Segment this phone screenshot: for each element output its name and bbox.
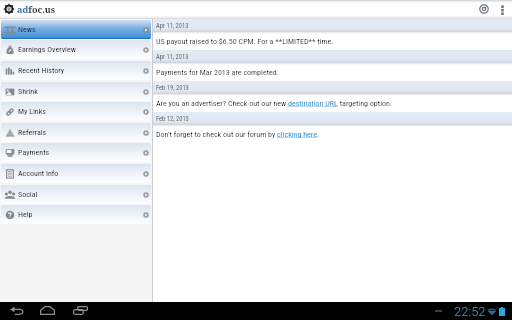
button[interactable]: Refresh (477, 2, 491, 16)
staticText: Earnings Overview (18, 45, 76, 54)
staticText: US payout raised to $6.50 CPM. For a **L… (156, 37, 334, 46)
button[interactable]: Home (39, 303, 56, 320)
button[interactable]: Recent History (1, 61, 151, 80)
button[interactable]: Help (1, 205, 151, 224)
button[interactable]: US payout raised to $6.50 CPM. For a **L… (153, 32, 512, 50)
staticText: Account Info (18, 169, 59, 178)
staticText: Help (18, 210, 33, 219)
staticText: Social (18, 190, 38, 199)
staticText: My Links (18, 107, 46, 116)
button[interactable]: More options (496, 3, 508, 15)
button[interactable]: My Links (1, 102, 151, 121)
staticText: 22:52 (454, 304, 486, 319)
staticText: Feb 12, 2013 (156, 115, 189, 123)
staticText: Don't forget to check out our forum by c… (156, 130, 320, 139)
button[interactable]: Shrink (1, 82, 151, 101)
button[interactable]: Back (8, 303, 25, 320)
button[interactable]: Are you an advertiser? Check out our new… (153, 94, 512, 112)
button[interactable]: Referrals (1, 123, 151, 142)
button[interactable]: News (1, 20, 151, 39)
staticText: Shrink (18, 87, 38, 96)
button[interactable]: Payments (1, 143, 151, 162)
staticText: Apr 11, 2013 (156, 22, 189, 30)
staticText: Are you an advertiser? Check out our new… (156, 99, 392, 108)
staticText: Referrals (18, 128, 47, 137)
staticText: News (18, 25, 36, 34)
staticText: Payments for Mar 2013 are completed. (156, 68, 279, 77)
button[interactable]: Account Info (1, 164, 151, 183)
button[interactable]: Recent apps (72, 303, 89, 320)
button[interactable]: Don't forget to check out our forum by c… (153, 125, 512, 143)
button[interactable]: Social (1, 185, 151, 204)
staticText: adfoc.us (17, 3, 56, 15)
staticText: Feb 19, 2013 (156, 84, 189, 92)
staticText: Apr 11, 2013 (156, 53, 189, 61)
button[interactable]: Payments for Mar 2013 are completed. (153, 63, 512, 81)
staticText: Payments (18, 148, 50, 157)
staticText: Recent History (18, 66, 65, 75)
button[interactable]: Earnings Overview (1, 40, 151, 59)
